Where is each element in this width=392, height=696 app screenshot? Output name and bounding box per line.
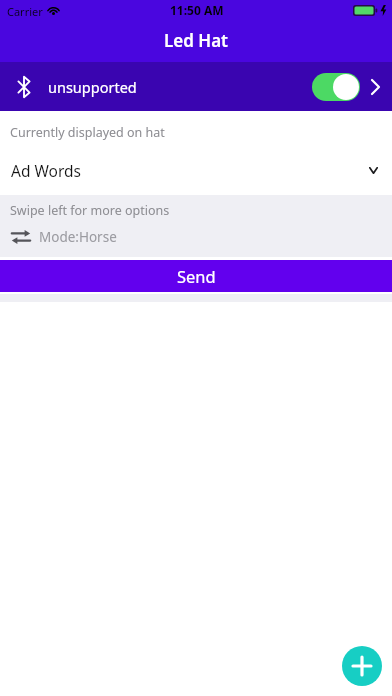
staticText: Led Hat: [164, 29, 228, 52]
button[interactable]: unsupported: [0, 62, 392, 111]
staticText: Mode:Horse: [39, 228, 117, 246]
staticText: Ad Words: [11, 160, 81, 181]
staticText: Currently displayed on hat: [10, 124, 165, 141]
staticText: Send: [177, 265, 216, 287]
button[interactable]: Ad Words: [0, 111, 392, 195]
button[interactable]: Send: [0, 260, 392, 292]
button[interactable]: [342, 646, 382, 686]
staticText: 11:50 AM: [170, 2, 224, 18]
button[interactable]: [312, 73, 360, 101]
staticText: unsupported: [48, 77, 137, 97]
staticText: Carrier: [7, 4, 43, 19]
staticText: Swipe left for more options: [10, 202, 170, 219]
button[interactable]: Mode:Horse: [0, 225, 392, 249]
